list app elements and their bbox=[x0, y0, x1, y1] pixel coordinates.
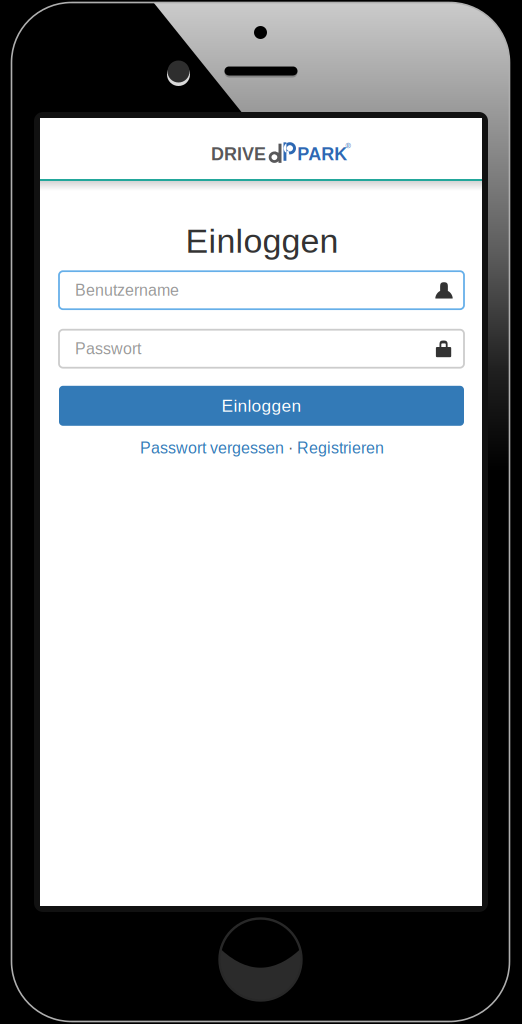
staticText: Einloggen bbox=[221, 396, 301, 415]
button[interactable]: Registrieren bbox=[297, 439, 384, 457]
staticText: Registrieren bbox=[297, 439, 384, 457]
button[interactable]: DRIVE bbox=[212, 141, 350, 167]
staticText: Passwort bbox=[75, 340, 141, 358]
staticText: ® bbox=[346, 142, 351, 150]
staticText: · bbox=[284, 439, 297, 457]
staticText: Einloggen bbox=[185, 222, 338, 260]
staticText: PARK bbox=[297, 144, 347, 164]
staticText: Benutzername bbox=[75, 281, 179, 299]
staticText: DRIVE bbox=[211, 144, 266, 164]
staticText: Passwort vergessen bbox=[140, 439, 284, 457]
button[interactable]: Einloggen bbox=[59, 386, 464, 426]
button[interactable]: Passwort vergessen bbox=[140, 439, 284, 457]
